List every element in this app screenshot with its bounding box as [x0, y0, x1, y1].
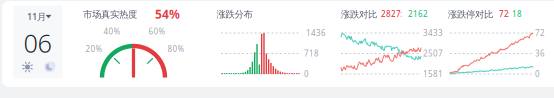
staticText: 涨跌分布 — [216, 9, 252, 20]
button[interactable]: 市场真实热度 — [0, 0, 554, 98]
staticText: 1581 — [423, 69, 443, 79]
staticText: 3433 — [423, 28, 443, 38]
staticText: 36 — [535, 48, 545, 59]
staticText: 06 — [23, 26, 51, 60]
staticText: 718 — [304, 48, 319, 59]
staticText: 1436 — [306, 28, 326, 38]
button[interactable]: 涨跌停对比 — [0, 0, 554, 98]
staticText: : — [400, 9, 402, 19]
staticText: 11月 — [27, 10, 46, 23]
staticText: 20% — [85, 44, 102, 54]
button[interactable]: 涨跌分布 — [0, 0, 554, 98]
button[interactable]: 11月 — [0, 0, 554, 98]
staticText: 60% — [148, 26, 165, 37]
staticText: 0 — [535, 69, 540, 79]
staticText: 2827 — [381, 9, 401, 19]
staticText: 18 — [512, 9, 522, 19]
button[interactable]: 涨跌对比 — [0, 0, 554, 98]
staticText: 2162 — [408, 9, 428, 19]
staticText: 80% — [167, 44, 184, 54]
staticText: 72 — [499, 9, 509, 19]
staticText: 涨跌停对比 — [448, 9, 493, 20]
staticText: 72 — [535, 28, 545, 38]
staticText: 40% — [103, 26, 120, 37]
staticText: : — [507, 9, 509, 19]
staticText: 0 — [304, 69, 309, 79]
staticText: 市场真实热度 — [83, 9, 137, 20]
staticText: 2507 — [423, 48, 443, 59]
staticText: 54% — [155, 6, 180, 22]
staticText: 涨跌对比 — [341, 9, 377, 20]
